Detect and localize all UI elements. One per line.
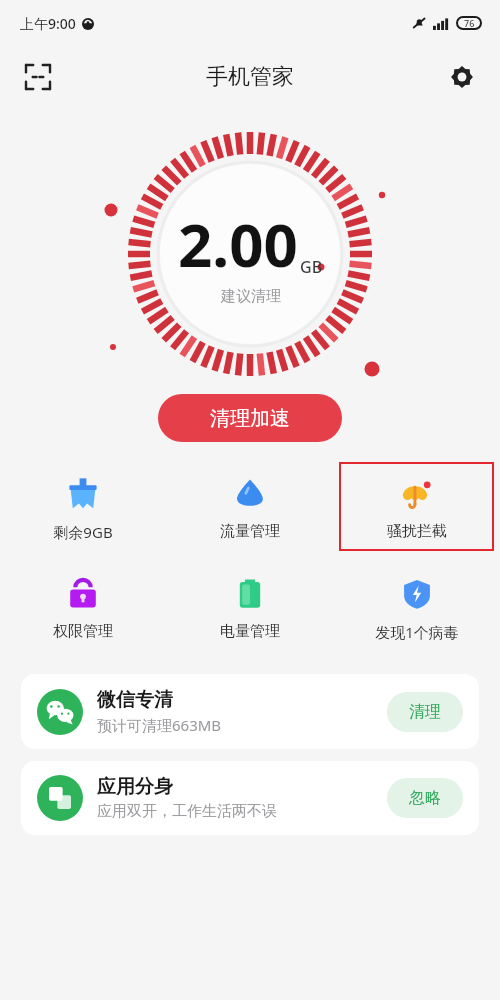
staticText: 微信专清 [97,688,173,712]
button[interactable]: 清理 [387,692,463,732]
staticText: 忽略 [409,788,441,808]
staticText: 2.00 [178,203,298,285]
staticText: 权限管理 [53,622,113,641]
button[interactable]: 应用分身 [21,761,479,835]
button[interactable]: 电量管理 [172,562,327,651]
staticText: 骚扰拦截 [387,522,447,541]
button[interactable]: 权限管理 [6,562,160,651]
button[interactable]: 发现1个病毒 [339,562,494,652]
staticText: 76 [464,17,475,29]
button[interactable]: 微信专清 [21,674,479,749]
staticText: 上午9:00 [20,14,76,33]
staticText: 预计可清理663MB [97,715,222,735]
button[interactable]: Settings [440,55,484,99]
staticText: 应用双开，工作生活两不误 [97,802,277,821]
staticText: 建议清理 [221,287,281,306]
staticText: 电量管理 [220,622,280,641]
button[interactable]: Scan [16,55,60,99]
staticText: 清理加速 [210,406,290,431]
staticText: 清理 [409,702,441,722]
staticText: GB [300,256,323,278]
staticText: 剩余9GB [53,522,113,542]
staticText: 流量管理 [220,522,280,541]
staticText: 应用分身 [97,775,173,799]
staticText: 发现1个病毒 [375,622,459,642]
button[interactable]: 清理加速 [158,394,342,442]
staticText: 手机管家 [206,63,294,91]
button[interactable]: 流量管理 [172,462,327,551]
button[interactable]: 骚扰拦截 [339,462,494,551]
button[interactable]: 剩余9GB [6,462,160,552]
button[interactable]: 忽略 [387,778,463,818]
